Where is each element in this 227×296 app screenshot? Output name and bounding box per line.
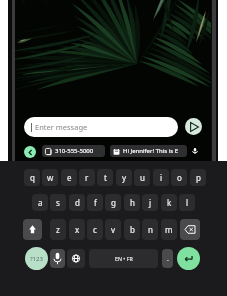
button[interactable]: e <box>61 169 77 186</box>
button[interactable]: Shift <box>23 219 42 240</box>
button[interactable]: Hi Jennifer! This is E <box>110 145 187 157</box>
button[interactable]: x <box>69 219 85 240</box>
button[interactable]: j <box>142 194 158 211</box>
staticText: y <box>122 172 127 183</box>
staticText: a <box>38 197 43 208</box>
staticText: x <box>75 224 80 235</box>
button[interactable]: q <box>24 169 40 186</box>
staticText: g <box>111 197 116 208</box>
staticText: j <box>149 197 152 208</box>
button[interactable]: Backspace <box>180 219 200 240</box>
button[interactable]: i <box>153 169 169 186</box>
staticText: d <box>75 197 80 208</box>
staticText: v <box>111 224 116 235</box>
button[interactable]: o <box>171 169 187 186</box>
button[interactable]: g <box>105 194 121 211</box>
staticText: h <box>130 197 135 208</box>
button[interactable]: k <box>161 194 177 211</box>
button[interactable]: w <box>42 169 58 186</box>
staticText: EN • FR <box>115 255 133 262</box>
staticText: i <box>160 172 163 183</box>
staticText: 310-555-5000 <box>55 147 94 155</box>
button[interactable]: u <box>134 169 150 186</box>
button[interactable]: Send <box>185 118 202 135</box>
staticText: m <box>165 224 173 235</box>
staticText: s <box>56 197 60 208</box>
staticText: ?123 <box>30 255 43 263</box>
button[interactable]: v <box>105 219 121 240</box>
button[interactable]: r <box>79 169 95 186</box>
button[interactable]: m <box>161 219 177 240</box>
button[interactable]: s <box>50 194 66 211</box>
staticText: p <box>196 172 201 183</box>
button[interactable]: c <box>87 219 103 240</box>
button[interactable]: b <box>124 219 140 240</box>
staticText: r <box>85 172 89 183</box>
button[interactable]: ?123 <box>25 247 48 270</box>
button[interactable]: z <box>50 219 66 240</box>
staticText: . <box>167 254 169 264</box>
staticText: o <box>177 172 182 183</box>
button[interactable]: a <box>32 194 48 211</box>
button[interactable]: n <box>142 219 158 240</box>
button[interactable]: . <box>162 249 173 268</box>
button[interactable]: h <box>124 194 140 211</box>
staticText: z <box>56 224 60 235</box>
staticText: n <box>148 224 153 235</box>
staticText: l <box>186 197 189 208</box>
staticText: c <box>93 224 97 235</box>
button[interactable]: Change language <box>67 249 85 268</box>
button[interactable]: 310-555-5000 <box>42 145 105 157</box>
button[interactable]: t <box>97 169 113 186</box>
staticText: u <box>140 172 145 183</box>
staticText: q <box>30 172 35 183</box>
button[interactable]: Back <box>24 146 36 158</box>
button[interactable]: Voice input <box>50 249 65 268</box>
staticText: t <box>104 172 107 183</box>
button[interactable]: y <box>116 169 132 186</box>
button[interactable]: p <box>190 169 206 186</box>
button[interactable]: Voice input <box>189 145 201 157</box>
button[interactable]: d <box>69 194 85 211</box>
staticText: w <box>47 172 54 183</box>
staticText: Hi Jennifer! This is E <box>123 147 178 155</box>
button[interactable]: f <box>87 194 103 211</box>
button[interactable]: Enter <box>177 247 200 270</box>
staticText: b <box>130 224 135 235</box>
button[interactable]: Enter message <box>24 117 178 137</box>
button[interactable]: l <box>179 194 195 211</box>
staticText: Enter message <box>35 122 88 132</box>
staticText: k <box>167 197 172 208</box>
staticText: f <box>94 197 97 208</box>
button[interactable]: EN • FR <box>89 249 158 268</box>
staticText: e <box>67 172 72 183</box>
